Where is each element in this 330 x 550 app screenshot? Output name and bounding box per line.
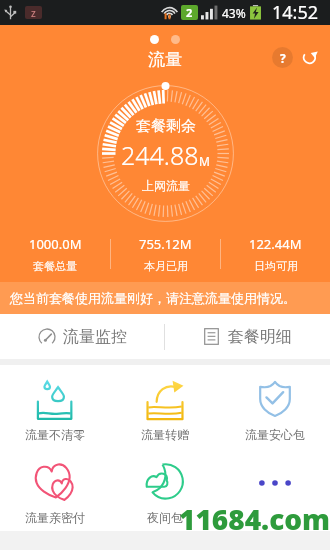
staticText: 日均可用: [254, 259, 298, 273]
staticText: 流量监控: [63, 327, 127, 347]
staticText: 流量亲密付: [25, 510, 85, 525]
button[interactable]: 套餐明细: [165, 314, 330, 359]
staticText: 流量转赠: [141, 427, 189, 442]
staticText: M: [199, 153, 210, 169]
button[interactable]: More: [220, 448, 330, 510]
button[interactable]: Refresh: [299, 47, 320, 68]
button[interactable]: 流量亲密付: [0, 448, 110, 525]
button[interactable]: 流量监控: [0, 314, 164, 359]
staticText: 755.12M: [139, 235, 192, 253]
button[interactable]: 122.44M: [221, 235, 330, 273]
button[interactable]: 夜间包: [110, 448, 220, 525]
button[interactable]: Help: [272, 47, 293, 68]
staticText: 您当前套餐使用流量刚好，请注意流量使用情况。: [10, 290, 296, 306]
button[interactable]: 流量安心包: [220, 365, 330, 442]
button[interactable]: 755.12M: [111, 235, 220, 273]
staticText: 上网流量: [142, 178, 190, 193]
staticText: 14:52: [272, 0, 319, 25]
staticText: 套餐剩余: [136, 117, 196, 136]
staticText: z: [31, 6, 36, 19]
button[interactable]: 流量转赠: [110, 365, 220, 442]
button[interactable]: 1000.0M: [0, 235, 110, 273]
staticText: 套餐明细: [228, 327, 292, 347]
staticText: 1000.0M: [29, 235, 82, 253]
staticText: 夜间包: [147, 510, 183, 525]
staticText: 流量安心包: [245, 427, 305, 442]
staticText: 流量: [148, 49, 182, 70]
staticText: 2: [186, 5, 193, 20]
staticText: 122.44M: [249, 235, 302, 253]
staticText: 43%: [222, 5, 246, 21]
staticText: ?: [280, 50, 286, 66]
staticText: 流量不清零: [25, 427, 85, 442]
staticText: 11684.com: [179, 500, 330, 538]
button[interactable]: 流量不清零: [0, 365, 110, 442]
staticText: 套餐总量: [33, 259, 77, 273]
staticText: 本月已用: [144, 259, 188, 273]
staticText: 244.88: [121, 138, 199, 172]
